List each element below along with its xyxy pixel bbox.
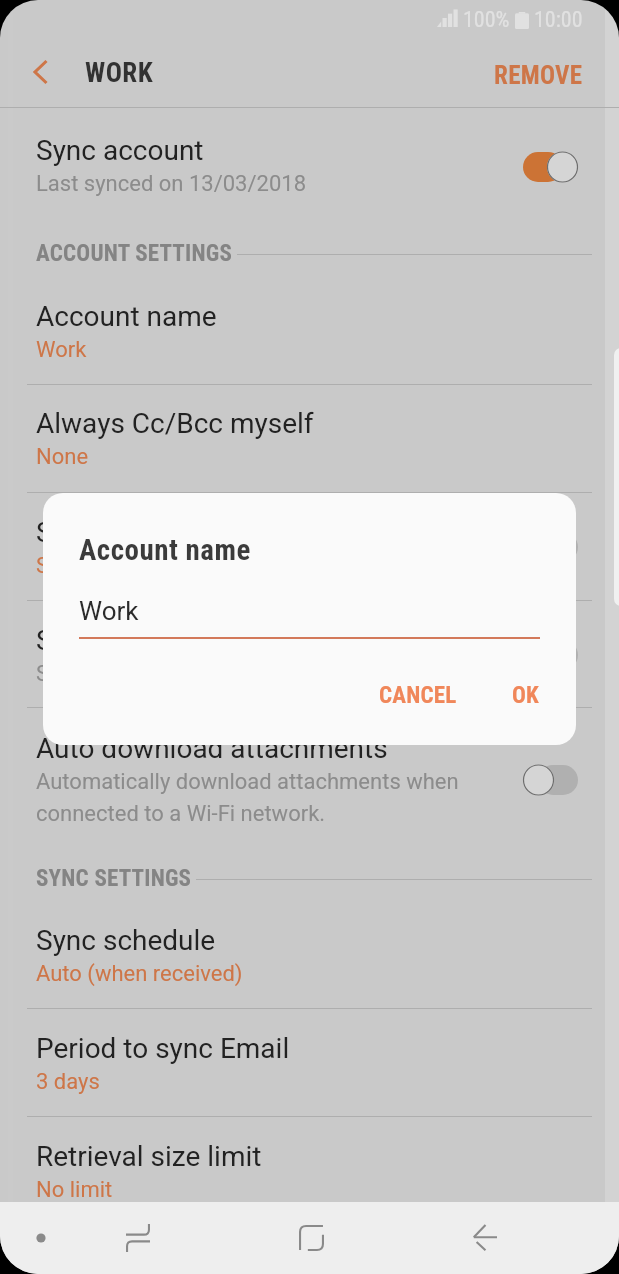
staticText: CANCEL [379,682,457,709]
button[interactable]: Sync schedule [0,901,619,1009]
button[interactable]: Home [251,1202,371,1274]
button[interactable]: Show images [0,493,619,601]
button[interactable]: Switch off [523,531,578,563]
button[interactable]: Switch off [523,764,578,796]
staticText: ACCOUNT SETTINGS [36,240,233,267]
staticText: Sync account [36,134,204,167]
staticText: Work [36,337,87,363]
staticText: Always Cc/Bcc myself [36,407,314,440]
staticText: Sync [36,661,84,687]
staticText: SYNC SETTINGS [36,865,192,892]
button[interactable]: Account name [0,277,619,385]
button[interactable]: Switch on [523,151,578,183]
staticText: Show [36,553,91,579]
staticText: OK [512,682,540,709]
staticText: 100% [463,7,510,33]
button[interactable]: OK [498,668,554,723]
staticText: REMOVE [494,61,583,90]
button[interactable]: Auto download attachments [0,708,619,852]
staticText: Last synced on 13/03/2018 [36,171,307,197]
staticText: Work [79,596,139,626]
staticText: Period to sync Email [36,1032,290,1065]
staticText: Auto (when received) [36,961,243,987]
button[interactable]: Sync Email [0,601,619,708]
staticText: No limit [36,1177,113,1203]
button[interactable]: Always Cc/Bcc myself [0,385,619,493]
button[interactable]: Back [425,1202,545,1274]
staticText: 3 days [36,1069,100,1095]
button[interactable]: Period to sync Email [0,1009,619,1117]
staticText: None [36,444,89,470]
staticText: Auto download attachments [36,732,388,765]
staticText: 10:00 [534,7,583,33]
staticText: Show images [36,516,204,549]
staticText: WORK [85,57,154,89]
button[interactable]: Switch off [523,639,578,671]
button[interactable]: Navigate up [17,48,65,96]
staticText: Automatically download attachments when [36,769,459,795]
button[interactable]: Retrieval size limit [0,1117,619,1202]
staticText: Sync Email [36,624,173,657]
staticText: connected to a Wi-Fi network. [36,801,326,827]
button[interactable]: Show menu [0,1202,82,1274]
staticText: Sync schedule [36,924,216,957]
button[interactable]: REMOVE [458,45,619,106]
button[interactable]: Sync account [0,108,619,225]
button[interactable]: CANCEL [365,668,471,723]
button[interactable]: Recent apps [82,1202,194,1274]
staticText: Retrieval size limit [36,1140,262,1173]
staticText: Account name [36,300,217,333]
staticText: Account name [79,533,251,567]
